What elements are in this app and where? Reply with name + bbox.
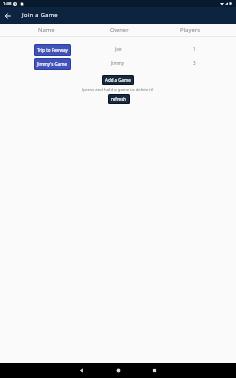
staticText: Add a Game <box>105 77 131 83</box>
staticText: Players <box>180 26 200 34</box>
staticText: Jimmy's Game <box>37 61 68 67</box>
staticText: Owner <box>110 26 129 34</box>
staticText: Jimmy <box>111 60 125 66</box>
button[interactable]: refresh <box>108 94 130 104</box>
staticText: Trip to Fenway <box>37 47 68 53</box>
staticText: 1:38 <box>3 1 12 7</box>
button[interactable]: Add a Game <box>102 75 134 85</box>
button[interactable]: Back <box>65 363 97 378</box>
staticText: Joe <box>115 46 122 52</box>
button[interactable]: Back <box>0 8 16 24</box>
staticText: refresh <box>111 96 127 102</box>
button[interactable]: Trip to Fenway <box>34 44 71 56</box>
button[interactable]: Jimmy's Game <box>34 58 71 70</box>
staticText: Join a Game <box>22 11 58 19</box>
staticText: Name <box>38 26 55 34</box>
button[interactable]: Recents <box>138 363 170 378</box>
staticText: (press and hold a game to delete it) <box>82 86 154 92</box>
staticText: 3 <box>193 60 196 66</box>
staticText: 1 <box>193 46 196 52</box>
button[interactable]: Home <box>102 363 134 378</box>
